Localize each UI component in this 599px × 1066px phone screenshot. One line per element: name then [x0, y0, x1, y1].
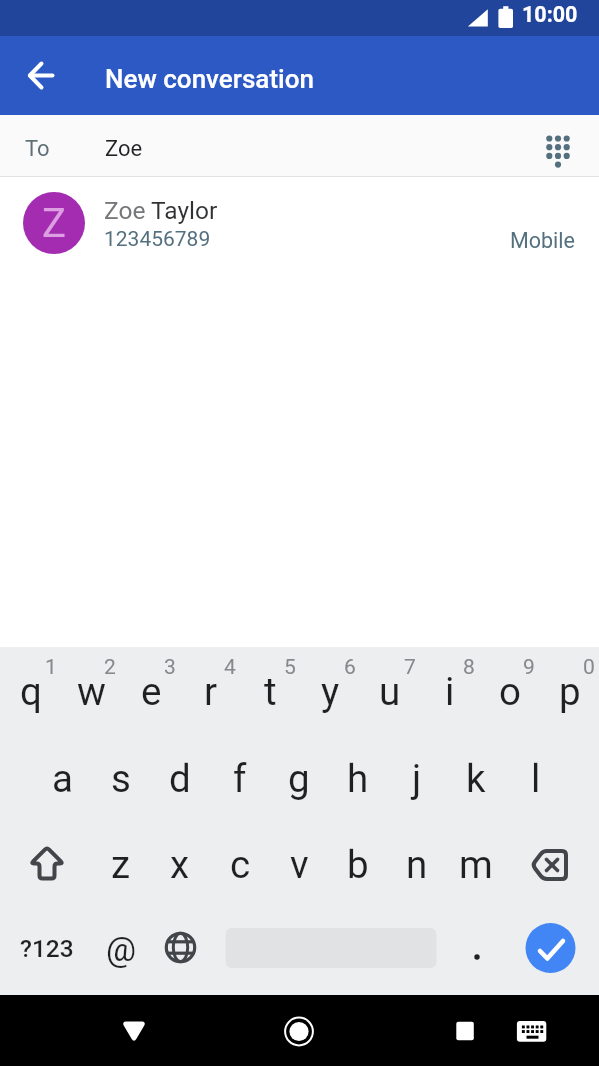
staticText: d	[169, 756, 191, 801]
staticText: i	[445, 669, 455, 714]
staticText: w	[77, 669, 106, 714]
staticText: s	[111, 756, 131, 801]
staticText: x	[170, 842, 190, 887]
staticText: 123456789	[104, 227, 211, 252]
staticText: 10:00	[522, 2, 578, 27]
staticText: l	[531, 756, 541, 801]
staticText: Zoe	[105, 136, 143, 162]
staticText: p	[559, 669, 581, 714]
staticText: a	[52, 756, 73, 801]
staticText: g	[288, 756, 310, 801]
staticText: 8	[463, 655, 475, 680]
staticText: v	[290, 842, 309, 887]
staticText: 1	[45, 655, 57, 680]
staticText: h	[347, 756, 369, 801]
staticText: t	[264, 669, 277, 714]
staticText: 0	[583, 655, 595, 680]
staticText: 9	[523, 655, 535, 680]
staticText: 7	[404, 655, 416, 680]
staticText: u	[379, 669, 401, 714]
staticText: To	[25, 136, 50, 162]
staticText: m	[459, 842, 493, 887]
staticText: ?123	[20, 934, 74, 963]
staticText: @	[106, 930, 137, 969]
staticText: c	[230, 842, 251, 887]
staticText: e	[141, 669, 162, 714]
staticText: n	[406, 842, 428, 887]
staticText: b	[347, 842, 369, 887]
staticText: f	[233, 756, 247, 801]
staticText: Zoe Taylor	[104, 196, 218, 225]
staticText: Mobile	[510, 228, 575, 253]
staticText: 6	[344, 655, 356, 680]
staticText: y	[321, 669, 340, 714]
staticText: 4	[224, 655, 236, 680]
staticText: 3	[164, 655, 176, 680]
staticText: New conversation	[105, 64, 314, 94]
staticText: q	[20, 669, 42, 714]
staticText: z	[111, 842, 131, 887]
staticText: j	[412, 756, 422, 801]
staticText: 5	[284, 655, 296, 680]
staticText: 2	[104, 655, 116, 680]
staticText: r	[204, 669, 218, 714]
staticText: k	[466, 756, 486, 801]
staticText: Z	[42, 200, 66, 247]
staticText: o	[499, 669, 521, 714]
